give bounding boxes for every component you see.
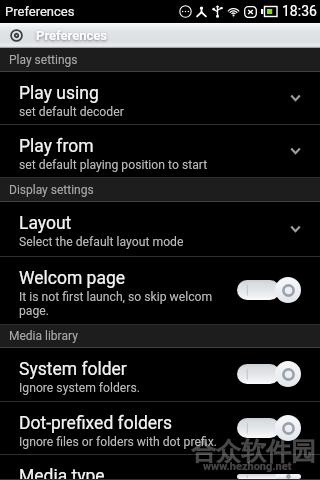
button[interactable]: Layout <box>0 202 320 257</box>
staticText: Welcom page <box>19 268 126 289</box>
button[interactable]: Dot-prefixed folders <box>0 402 320 455</box>
staticText: Media library <box>9 329 78 343</box>
staticText: Play from <box>19 136 94 157</box>
button[interactable]: Toggle <box>237 274 301 306</box>
other: Expand <box>290 213 301 245</box>
button[interactable]: Welcom page <box>0 257 320 325</box>
staticText: set default playing position to start <box>19 158 208 172</box>
staticText: Ignore system folders. <box>19 381 140 395</box>
button[interactable]: Play from <box>0 125 320 178</box>
button[interactable]: Media type <box>0 455 320 480</box>
staticText: System folder <box>19 359 127 380</box>
staticText: 18:36 <box>282 3 317 19</box>
staticText: Layout <box>19 213 72 234</box>
other: Expand <box>290 82 301 114</box>
button[interactable]: Toggle <box>237 474 301 479</box>
staticText: Display settings <box>9 183 94 197</box>
staticText: Preferences <box>36 28 108 43</box>
staticText: set default decoder <box>19 105 124 119</box>
button[interactable]: Preferences <box>10 28 108 43</box>
staticText: 合众软件园 <box>191 436 316 467</box>
button[interactable]: Play using <box>0 72 320 125</box>
staticText: Ignore files or folders with dot prefix. <box>19 435 217 449</box>
staticText: Media type <box>19 466 105 479</box>
staticText: Play settings <box>9 53 78 67</box>
staticText: Select the default layout mode <box>19 235 184 249</box>
staticText: Preferences <box>5 4 75 19</box>
staticText: Play using <box>19 83 99 104</box>
button[interactable]: Toggle <box>237 412 301 444</box>
staticText: It is not first launch, so skip welcom p… <box>19 290 225 318</box>
button[interactable]: System folder <box>0 348 320 402</box>
staticText: www.hezhong.net <box>203 460 292 473</box>
button[interactable]: Toggle <box>237 358 301 390</box>
other: Expand <box>290 135 301 167</box>
staticText: Dot-prefixed folders <box>19 413 173 434</box>
